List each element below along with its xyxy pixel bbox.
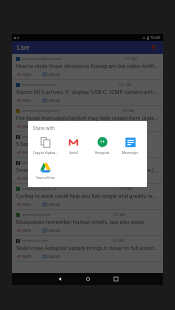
staticText: www.gsmarena.com xyxy=(22,82,56,87)
staticText: SHARE xyxy=(21,98,32,102)
button[interactable]: SIMILAR xyxy=(42,123,62,129)
staticText: SIMILAR xyxy=(47,202,61,206)
staticText: www.telegraph.co.uk xyxy=(22,186,57,191)
button[interactable]: www.gsmarena.com xyxy=(12,80,163,105)
staticText: SIMILAR xyxy=(47,150,61,154)
button[interactable]: SHARE xyxy=(16,201,33,207)
staticText: SHARE xyxy=(21,202,32,206)
staticText: 1:01 AM xyxy=(118,82,132,87)
staticText: Save to Drive xyxy=(36,176,55,180)
button[interactable]: SHARE xyxy=(16,253,33,259)
staticText: Mosquitoes remember human smells, but al… xyxy=(16,218,145,225)
button[interactable]: Hangouts xyxy=(90,135,115,156)
button[interactable]: SIMILAR xyxy=(42,71,62,77)
staticText: 1:01 AM xyxy=(119,186,133,191)
staticText: SHARE xyxy=(21,254,32,258)
button[interactable]: Back xyxy=(54,273,66,285)
button[interactable]: Home xyxy=(82,273,94,285)
button[interactable]: techcrunch.com xyxy=(12,158,163,183)
button[interactable]: SIMILAR xyxy=(42,149,62,155)
staticText: techcrunch.com xyxy=(22,160,49,165)
button[interactable]: SIMILAR xyxy=(42,175,62,181)
staticText: SIMILAR xyxy=(47,176,61,180)
button[interactable]: Save to Drive xyxy=(33,160,58,181)
staticText: Copy to clipboard xyxy=(33,151,58,155)
button[interactable]: techcrunch.com xyxy=(12,132,163,157)
other: Hangouts xyxy=(97,137,108,148)
button[interactable]: Recents xyxy=(110,273,122,285)
staticText: SIMILAR xyxy=(47,72,61,76)
button[interactable]: SIMILAR xyxy=(42,201,62,207)
button[interactable]: SIMILAR xyxy=(42,253,62,259)
button[interactable]: SHARE xyxy=(16,71,33,77)
staticText: Messenger xyxy=(122,151,139,155)
other: Messenger xyxy=(125,137,136,148)
staticText: www.androidpolice.com xyxy=(22,56,62,61)
staticText: www.nature.com xyxy=(22,212,50,217)
button[interactable]: www.androidpolice.com xyxy=(12,54,163,79)
button[interactable]: techcrunch.com xyxy=(12,236,163,261)
button[interactable]: Copy to clipboard xyxy=(33,135,58,156)
staticText: techcrunch.com xyxy=(22,238,49,243)
staticText: Flat-faced marsupials/opilioh may help r… xyxy=(16,114,159,121)
staticText: Tesla's new Autopilot update brings it c… xyxy=(16,244,159,251)
staticText: SIMILAR xyxy=(47,124,61,128)
staticText: techcrunch.com xyxy=(22,134,49,139)
staticText: 1:01 AM xyxy=(124,56,138,61)
other: Copy to clipboard xyxy=(40,137,51,148)
staticText: SHARE xyxy=(21,176,32,180)
staticText: Share with xyxy=(33,125,55,131)
staticText: SIMILAR xyxy=(47,254,61,258)
button[interactable]: Messenger xyxy=(118,135,143,156)
staticText: SHARE xyxy=(21,124,32,128)
staticText: Live xyxy=(17,43,30,52)
button[interactable]: SHARE xyxy=(16,123,33,129)
button[interactable]: SHARE xyxy=(16,227,33,233)
button[interactable]: www.telegraph.co.uk xyxy=(12,184,163,209)
button[interactable]: SHARE xyxy=(16,97,33,103)
other: Save to Drive xyxy=(40,162,51,173)
button[interactable]: www.nature.com xyxy=(12,210,163,235)
staticText: 1:01 AM xyxy=(111,238,125,243)
button[interactable]: Gmail xyxy=(61,135,86,156)
staticText: www.sciencedaily.com xyxy=(22,108,59,113)
button[interactable]: www.sciencedaily.com xyxy=(12,106,163,131)
staticText: Gmail xyxy=(69,151,78,155)
button[interactable]: SHARE xyxy=(16,175,33,181)
staticText: SIMILAR xyxy=(47,228,61,232)
staticText: SHARE xyxy=(21,150,32,154)
staticText: How to mute those obnoxious Instagram li… xyxy=(16,62,159,69)
staticText: 5 Sectors Benefiting from the Surge of D… xyxy=(16,140,148,147)
button[interactable]: SIMILAR xyxy=(42,227,62,233)
staticText: Cycling to work could help you live long… xyxy=(16,192,159,199)
staticText: SIMILAR xyxy=(47,98,61,102)
staticText: Xiaomi Mi 6 arrives: 5" display, USB-C, … xyxy=(16,88,159,95)
staticText: Smart Homes Are the Future of Residentia… xyxy=(16,166,159,173)
staticText: SHARE xyxy=(21,72,32,76)
staticText: 10:00 xyxy=(150,35,161,40)
button[interactable]: SHARE xyxy=(16,149,33,155)
staticText: 1:01 AM xyxy=(112,212,126,217)
button[interactable]: SIMILAR xyxy=(42,97,62,103)
other: Gmail xyxy=(68,137,79,148)
staticText: 1:01 AM xyxy=(121,108,135,113)
staticText: Hangouts xyxy=(95,151,110,155)
staticText: SHARE xyxy=(21,228,32,232)
button[interactable]: Record xyxy=(149,43,158,52)
